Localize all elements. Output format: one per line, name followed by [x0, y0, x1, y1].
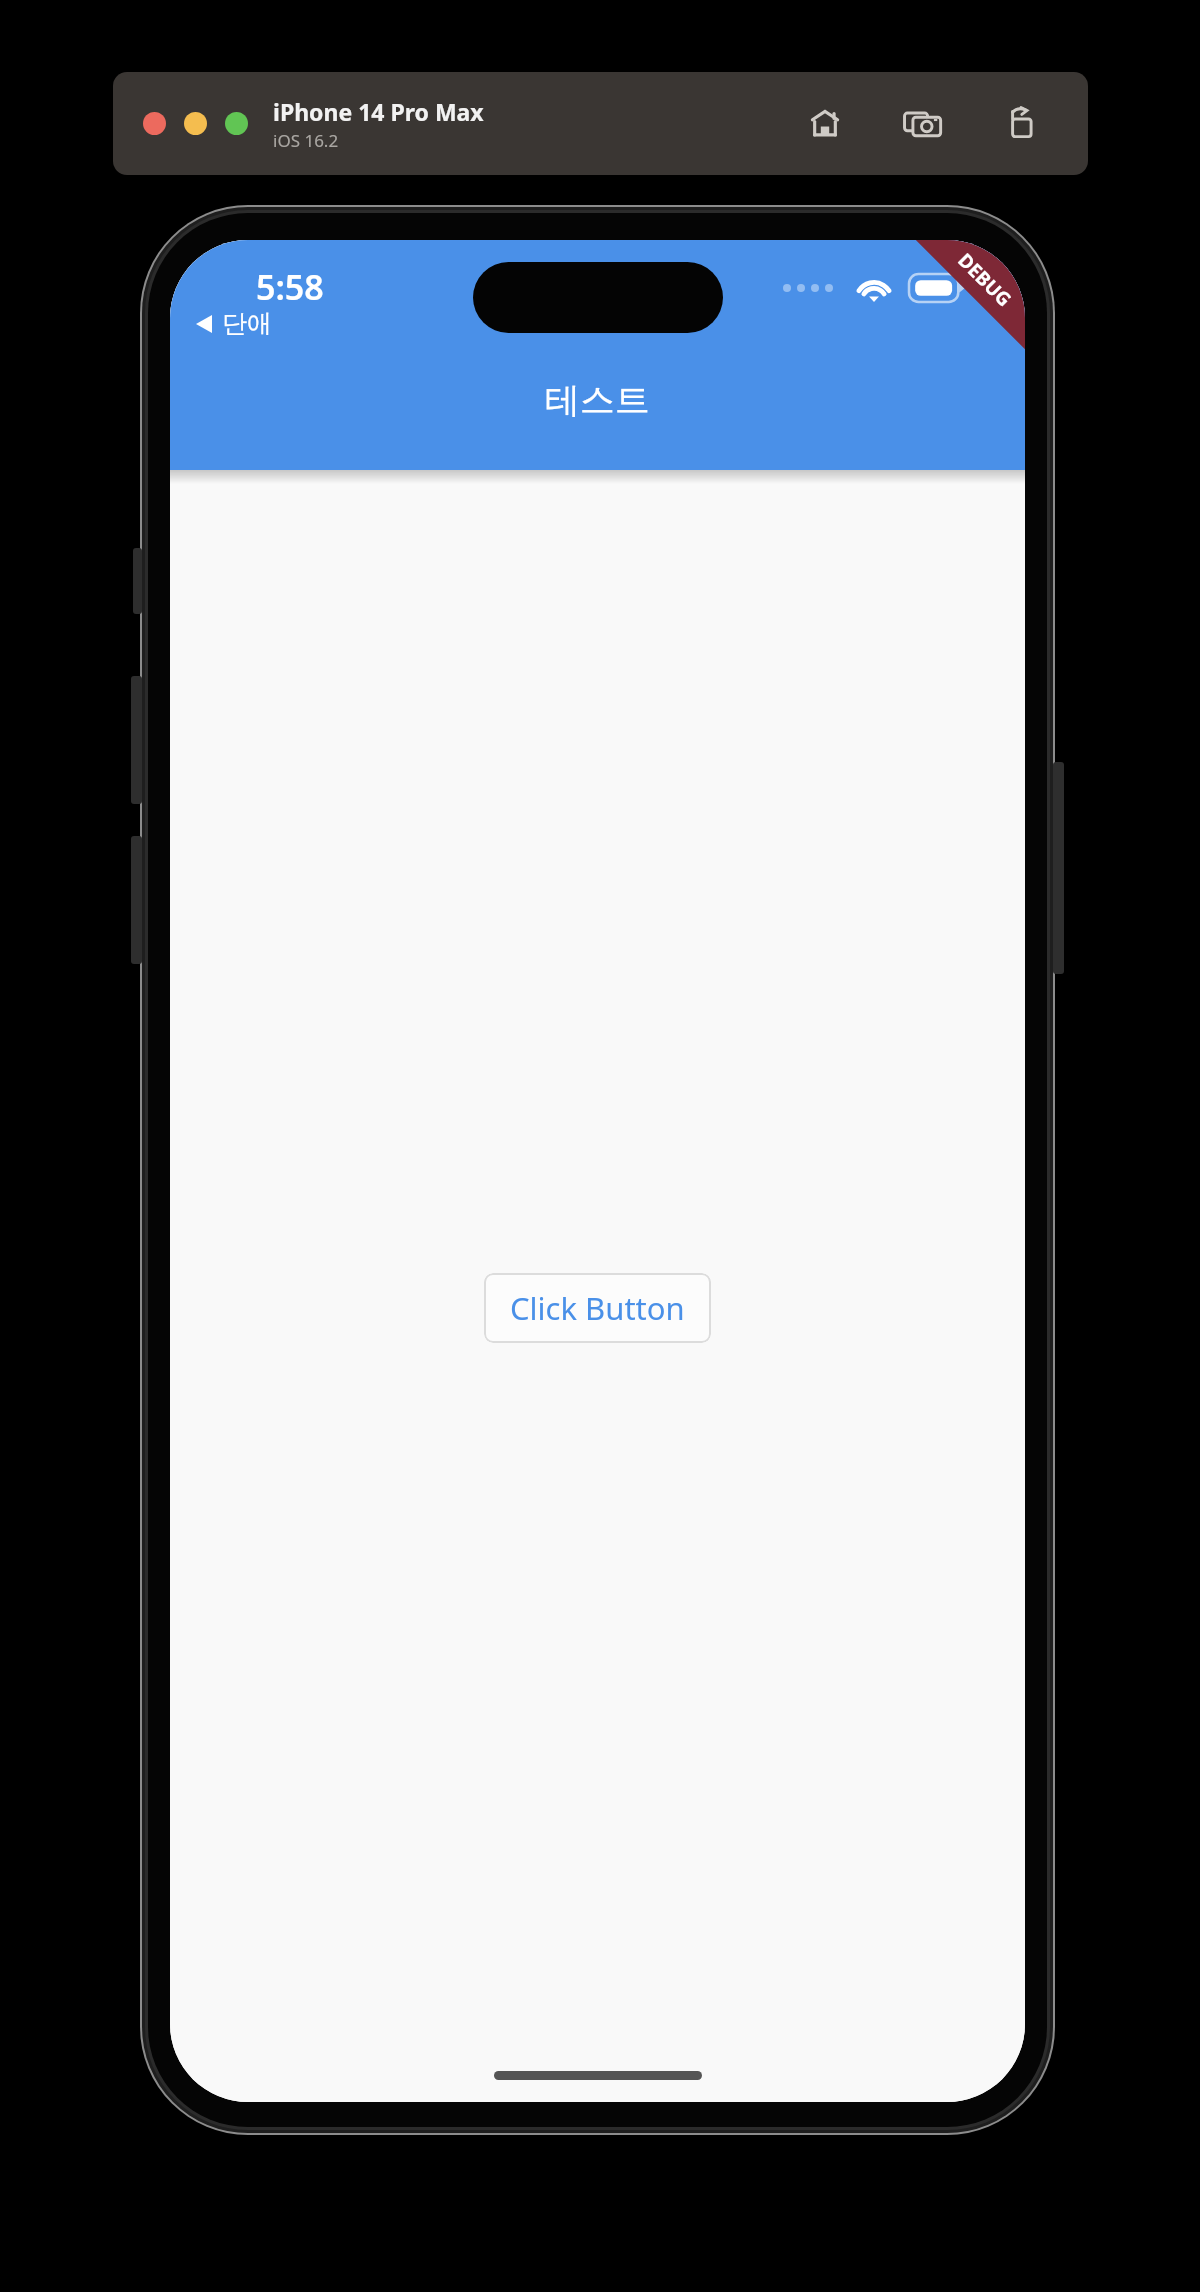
button[interactable]: Screenshot [902, 103, 944, 145]
staticText: 테스트 [545, 378, 650, 422]
button[interactable]: Zoom [225, 112, 248, 135]
staticText: Click Button [510, 1287, 685, 1329]
button[interactable]: Click Button [484, 1273, 711, 1343]
staticText: DEBUG [952, 247, 1018, 313]
staticText: 단애 [222, 308, 272, 339]
button[interactable]: Rotate [1000, 103, 1042, 145]
button[interactable]: Minimize [184, 112, 207, 135]
button[interactable]: Home [804, 103, 846, 145]
staticText: iPhone 14 Pro Max [273, 96, 484, 127]
staticText: 5:58 [256, 264, 324, 310]
button[interactable]: Close [143, 112, 166, 135]
staticText: iOS 16.2 [273, 129, 339, 152]
